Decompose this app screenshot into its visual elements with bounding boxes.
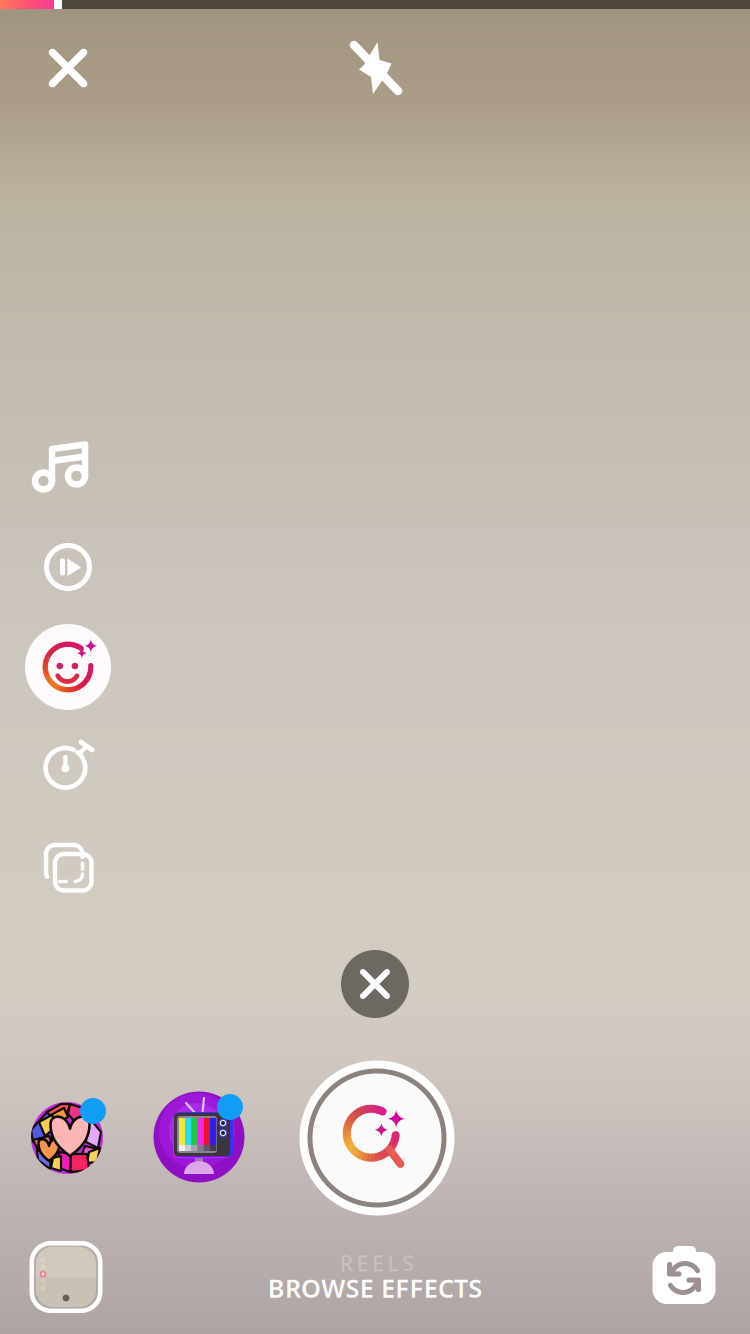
button[interactable]: Effects — [22, 621, 114, 713]
button[interactable]: Flash off — [331, 23, 421, 113]
button[interactable]: Close — [23, 23, 113, 113]
button[interactable]: Timer — [23, 723, 111, 811]
button[interactable]: Hearts effect — [27, 1098, 107, 1178]
button[interactable]: Remove effect — [337, 946, 413, 1022]
button[interactable]: Retro TV effect — [153, 1091, 245, 1183]
button[interactable]: Switch camera — [641, 1234, 727, 1320]
button[interactable]: Gallery — [23, 1234, 109, 1320]
button[interactable]: Layout — [26, 825, 114, 913]
button[interactable]: Add music — [24, 423, 112, 511]
staticText: REELS — [340, 1249, 414, 1277]
button[interactable]: Browse effects — [297, 1058, 457, 1218]
button[interactable]: Playback speed — [24, 523, 112, 611]
staticText: BROWSE EFFECTS — [268, 1271, 482, 1305]
